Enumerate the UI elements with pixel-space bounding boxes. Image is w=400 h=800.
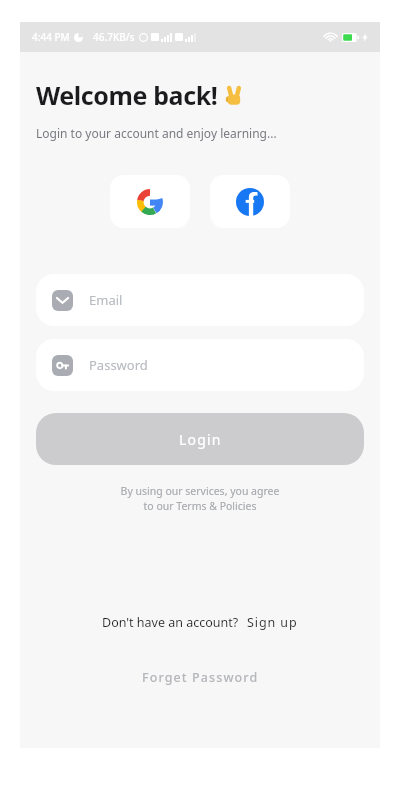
staticText: By using our services, you agree to our … xyxy=(44,484,356,513)
button[interactable]: Password xyxy=(36,339,364,391)
button[interactable]: Forget Password xyxy=(136,663,265,692)
staticText: 4:44 PM xyxy=(32,30,70,44)
staticText: Forget Password xyxy=(142,669,259,686)
staticText: Welcome back! xyxy=(36,78,218,112)
button[interactable]: Sign up xyxy=(247,614,298,631)
staticText: Password xyxy=(89,356,148,374)
staticText: Login xyxy=(179,430,222,449)
staticText: 46.7KB/s xyxy=(93,30,135,44)
button[interactable]: Login xyxy=(36,413,364,465)
staticText: Login to your account and enjoy learning… xyxy=(36,125,277,141)
staticText: Sign up xyxy=(247,614,298,631)
button[interactable]: Sign in with Facebook xyxy=(210,175,290,228)
button[interactable]: Sign in with Google xyxy=(110,175,190,228)
button[interactable]: Email xyxy=(36,274,364,326)
staticText: Don't have an account? xyxy=(102,614,239,631)
staticText: Email xyxy=(89,291,123,309)
